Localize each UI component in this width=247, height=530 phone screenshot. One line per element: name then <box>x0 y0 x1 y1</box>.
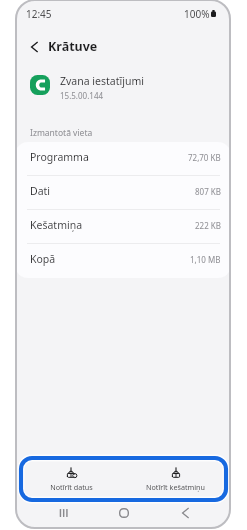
staticText: Krātuve <box>48 38 98 55</box>
button[interactable]: Back <box>175 503 195 523</box>
button[interactable]: Notīrīt datus <box>19 466 123 491</box>
button[interactable]: Kopā <box>15 244 231 278</box>
button[interactable]: Recent apps <box>53 503 73 523</box>
staticText: Zvana iestatījumi <box>60 74 144 88</box>
staticText: Programma <box>30 150 89 164</box>
button[interactable]: Dati <box>15 176 231 210</box>
staticText: 1,10 MB <box>190 254 221 265</box>
button[interactable]: Home <box>114 503 134 523</box>
staticText: Notīrīt kešatmiņu <box>146 482 205 492</box>
staticText: 222 KB <box>195 220 221 231</box>
staticText: 12:45 <box>26 7 52 21</box>
button[interactable]: Notīrīt kešatmiņu <box>123 466 228 491</box>
staticText: 15.5.00.144 <box>60 90 104 101</box>
button[interactable]: Programma <box>15 142 231 176</box>
staticText: Kešatmiņa <box>30 218 83 232</box>
staticText: 807 KB <box>195 186 221 197</box>
staticText: Notīrīt datus <box>50 482 93 492</box>
staticText: 72,70 KB <box>188 152 221 163</box>
staticText: Kopā <box>30 252 56 266</box>
staticText: Izmantotā vieta <box>30 127 93 139</box>
button[interactable]: Kešatmiņa <box>15 210 231 244</box>
button[interactable]: Back <box>24 37 44 57</box>
staticText: Dati <box>30 184 51 198</box>
staticText: 100% <box>184 7 210 21</box>
